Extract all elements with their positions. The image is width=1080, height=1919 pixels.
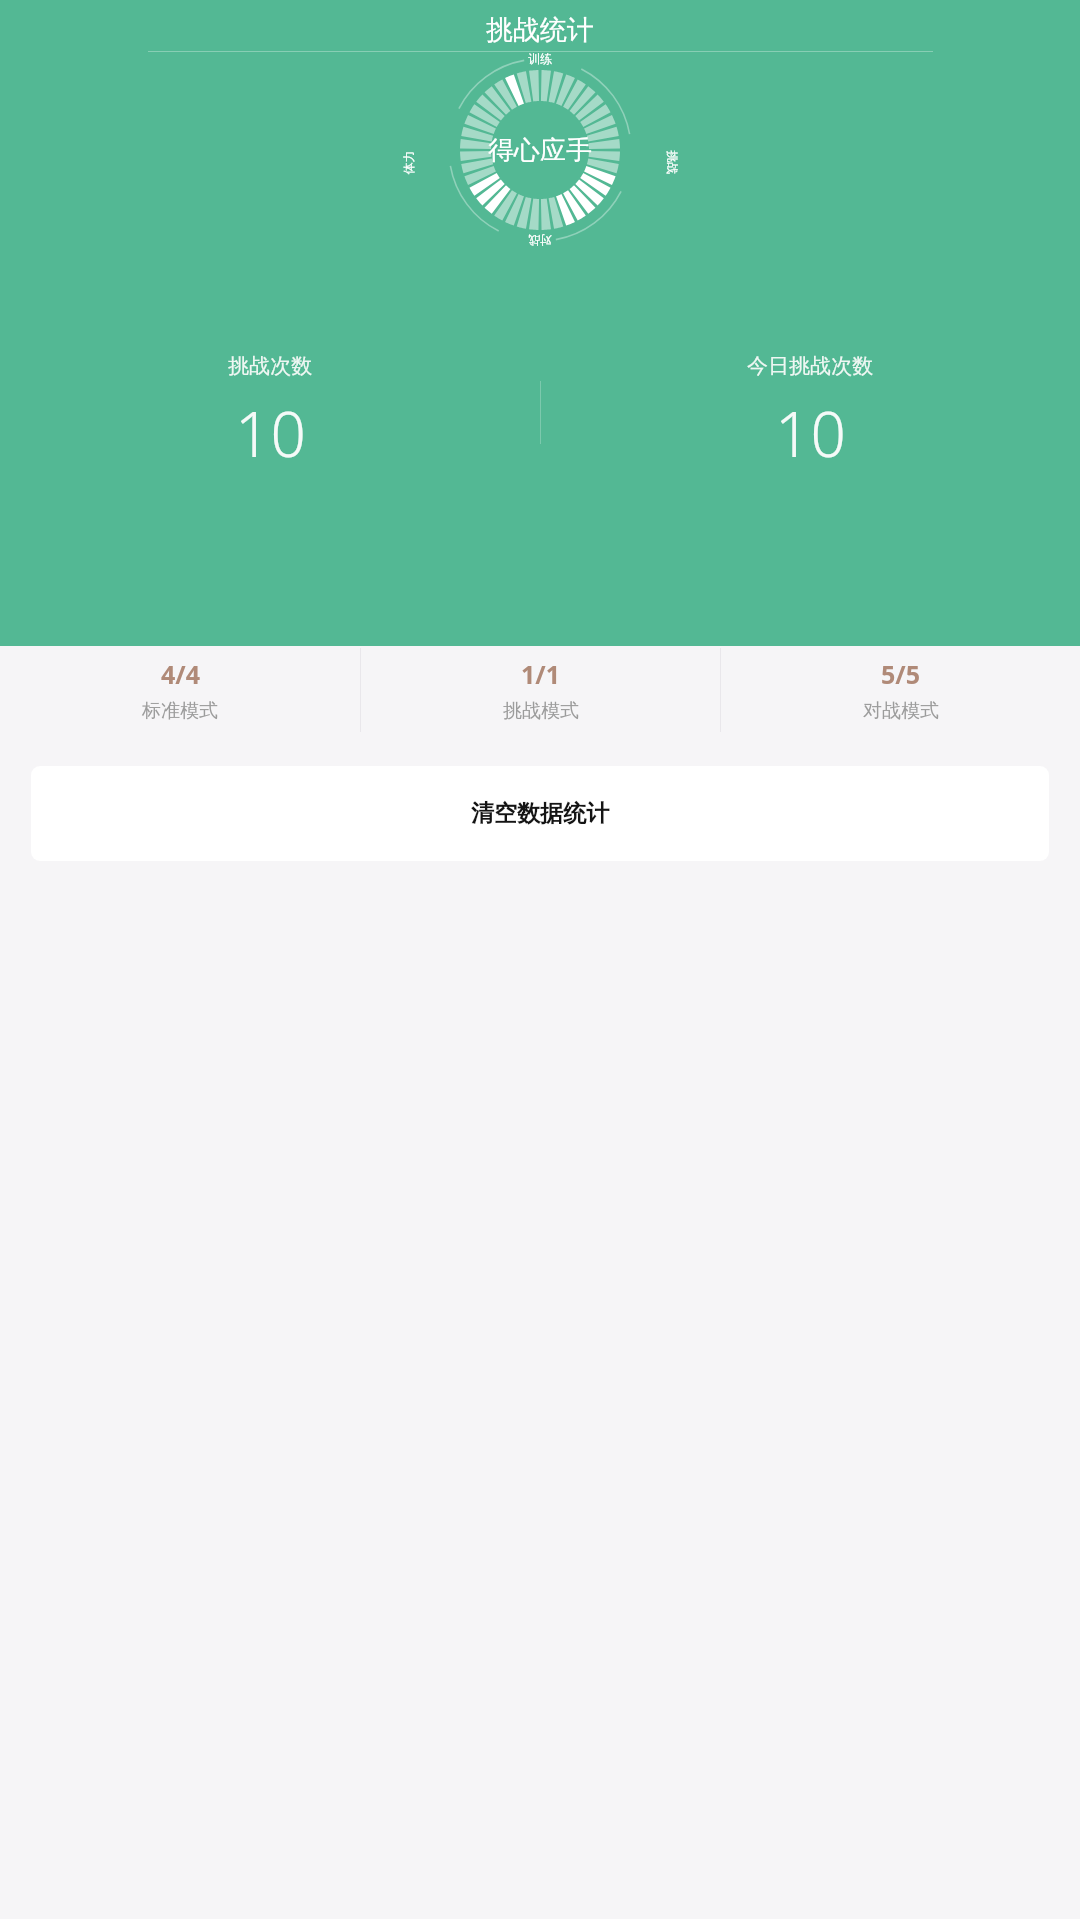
staticText: 清空数据统计 [471, 799, 609, 828]
staticText: 对战模式 [863, 699, 939, 723]
staticText: 1/1 [521, 657, 560, 691]
staticText: 挑战次数 [228, 353, 312, 379]
staticText: 体力 [400, 150, 415, 174]
staticText: 得心应手 [488, 134, 592, 167]
button[interactable]: 清空数据统计 [31, 766, 1049, 861]
button[interactable]: 1/1 [361, 646, 720, 734]
button[interactable]: 5/5 [721, 646, 1080, 734]
staticText: 10 [235, 391, 306, 475]
staticText: 10 [775, 391, 846, 475]
staticText: 对战 [528, 233, 552, 248]
staticText: 标准模式 [142, 699, 218, 723]
staticText: 挑战 [664, 150, 679, 174]
staticText: 今日挑战次数 [747, 353, 873, 379]
staticText: 4/4 [161, 657, 200, 691]
staticText: 挑战模式 [503, 699, 579, 723]
staticText: 挑战统计 [486, 13, 594, 47]
button[interactable]: 4/4 [0, 646, 360, 734]
staticText: 训练 [528, 51, 552, 66]
staticText: 5/5 [881, 657, 920, 691]
